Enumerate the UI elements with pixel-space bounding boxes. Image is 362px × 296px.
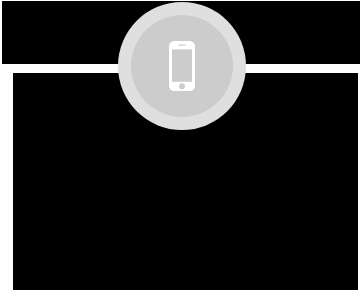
button[interactable] <box>2 1 360 64</box>
button[interactable]: Device avatar <box>118 2 246 130</box>
